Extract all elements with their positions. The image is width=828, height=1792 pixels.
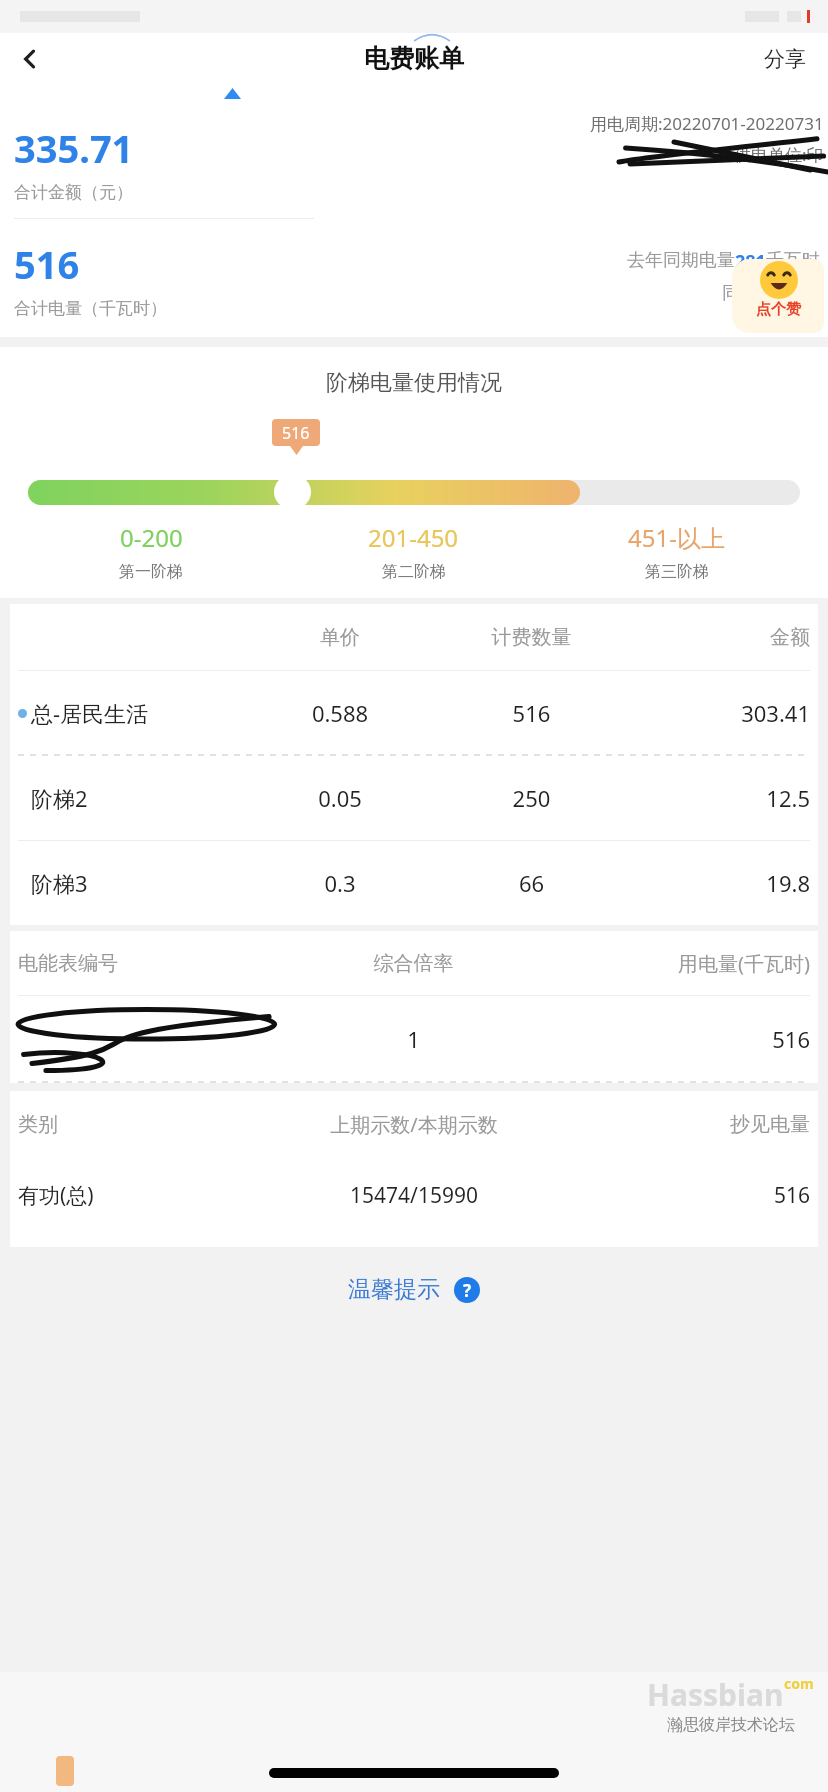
staticText: 单价 xyxy=(253,625,427,650)
staticText: 有功(总) xyxy=(18,1181,238,1210)
staticText: 0.3 xyxy=(253,868,427,898)
staticText: 516 xyxy=(427,698,636,728)
staticText: 第二阶梯 xyxy=(382,562,446,582)
staticText: 19.8 xyxy=(636,868,810,898)
staticText: 阶梯电量使用情况 xyxy=(326,369,502,397)
staticText: 供电单位:印 xyxy=(734,143,824,166)
staticText: 上期示数/本期示数 xyxy=(238,1111,590,1138)
button[interactable]: 阶梯3 xyxy=(10,841,818,925)
staticText: 12.5 xyxy=(636,783,810,813)
staticText: 用电量(千瓦时) xyxy=(530,950,810,977)
staticText: com xyxy=(784,1674,814,1693)
staticText: 电能表编号 xyxy=(18,951,297,976)
button[interactable]: 用电量滑块 xyxy=(274,475,311,509)
button[interactable]: 1 xyxy=(10,996,818,1082)
staticText: 第三阶梯 xyxy=(645,562,709,582)
staticText: 抄见电量 xyxy=(590,1112,810,1137)
staticText: ? xyxy=(463,1279,472,1302)
staticText: 类别 xyxy=(18,1112,238,1137)
staticText: 去年同期电量 xyxy=(627,249,735,272)
staticText: 阶梯3 xyxy=(31,868,88,898)
button[interactable]: Back xyxy=(6,35,54,83)
staticText: 516 xyxy=(282,422,310,444)
staticText: 335.71 xyxy=(14,122,134,174)
staticText: 0-200 xyxy=(120,521,183,554)
staticText: 瀚思彼岸技术论坛 xyxy=(667,1715,795,1735)
staticText: 千瓦时 xyxy=(766,249,820,272)
staticText: 分享 xyxy=(764,46,806,72)
button[interactable]: 有功(总) xyxy=(10,1157,818,1233)
staticText: 250 xyxy=(427,783,636,813)
staticText: 516 xyxy=(530,1024,810,1054)
button[interactable]: 阶梯2 xyxy=(10,756,818,840)
staticText: 金额 xyxy=(636,625,810,650)
staticText: 电费账单 xyxy=(364,43,464,74)
button[interactable]: 点个赞 xyxy=(732,259,824,333)
staticText: 201-450 xyxy=(368,521,459,554)
staticText: 281 xyxy=(735,249,766,274)
staticText: 83. xyxy=(794,282,820,307)
staticText: 66 xyxy=(427,868,636,898)
staticText: 点个赞 xyxy=(756,300,801,319)
staticText: 温馨提示 xyxy=(348,1275,440,1304)
staticText: 综合倍率 xyxy=(297,951,530,976)
staticText: 同比增长 xyxy=(722,282,794,305)
staticText: 1 xyxy=(297,1024,530,1054)
staticText: 合计电量（千瓦时） xyxy=(14,298,167,319)
staticText: 计费数量 xyxy=(427,625,636,650)
staticText: 516 xyxy=(590,1181,810,1210)
staticText: 0.05 xyxy=(253,783,427,813)
staticText: 总-居民生活 xyxy=(31,698,149,728)
staticText: 阶梯2 xyxy=(31,783,88,813)
staticText: 用电周期:20220701-20220731 xyxy=(590,112,824,135)
staticText: 516 xyxy=(14,238,80,290)
staticText: 303.41 xyxy=(636,698,810,728)
button[interactable]: 温馨提示 xyxy=(0,1263,828,1316)
button[interactable]: 分享 xyxy=(756,38,814,80)
staticText: 0.588 xyxy=(253,698,427,728)
staticText: Hassbian xyxy=(647,1674,784,1715)
button[interactable]: 总-居民生活 xyxy=(10,671,818,755)
staticText: 合计金额（元） xyxy=(14,182,133,203)
staticText: 第一阶梯 xyxy=(119,562,183,582)
staticText: 451-以上 xyxy=(628,521,725,554)
staticText: 15474/15990 xyxy=(238,1181,590,1210)
